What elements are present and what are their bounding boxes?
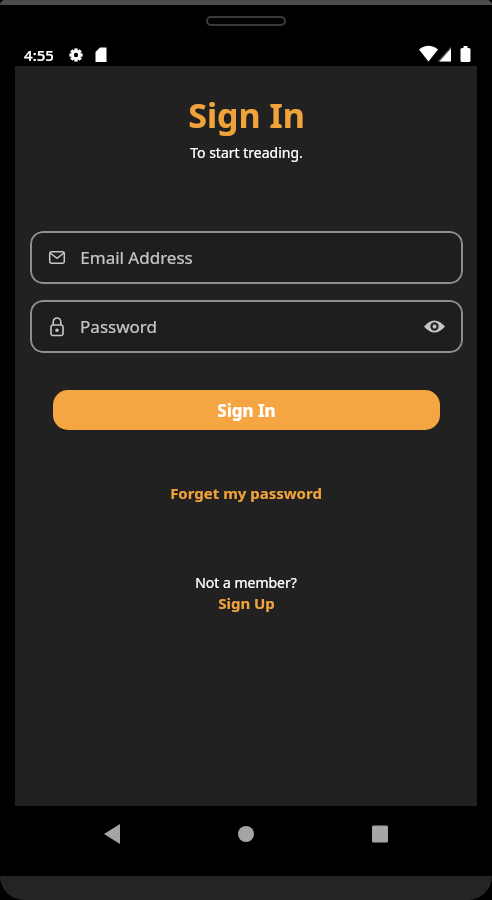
button[interactable] bbox=[96, 818, 128, 850]
staticText: Not a member? bbox=[195, 573, 297, 592]
button[interactable]: Password bbox=[30, 300, 463, 353]
staticText: Email Address bbox=[80, 246, 193, 269]
staticText: Forget my password bbox=[170, 483, 322, 503]
staticText: Password bbox=[80, 315, 157, 338]
button[interactable]: Sign Up bbox=[218, 593, 275, 613]
button[interactable]: Sign In bbox=[53, 390, 440, 430]
button[interactable] bbox=[364, 818, 396, 850]
button[interactable]: Forget my password bbox=[170, 483, 322, 503]
staticText: 4:55 bbox=[24, 45, 54, 65]
staticText: Sign In bbox=[188, 92, 305, 138]
button[interactable]: Email Address bbox=[30, 231, 463, 284]
staticText: Sign In bbox=[217, 399, 276, 422]
staticText: To start treading. bbox=[190, 143, 303, 162]
staticText: Sign Up bbox=[218, 593, 275, 613]
button[interactable] bbox=[424, 319, 445, 334]
button[interactable] bbox=[230, 818, 262, 850]
